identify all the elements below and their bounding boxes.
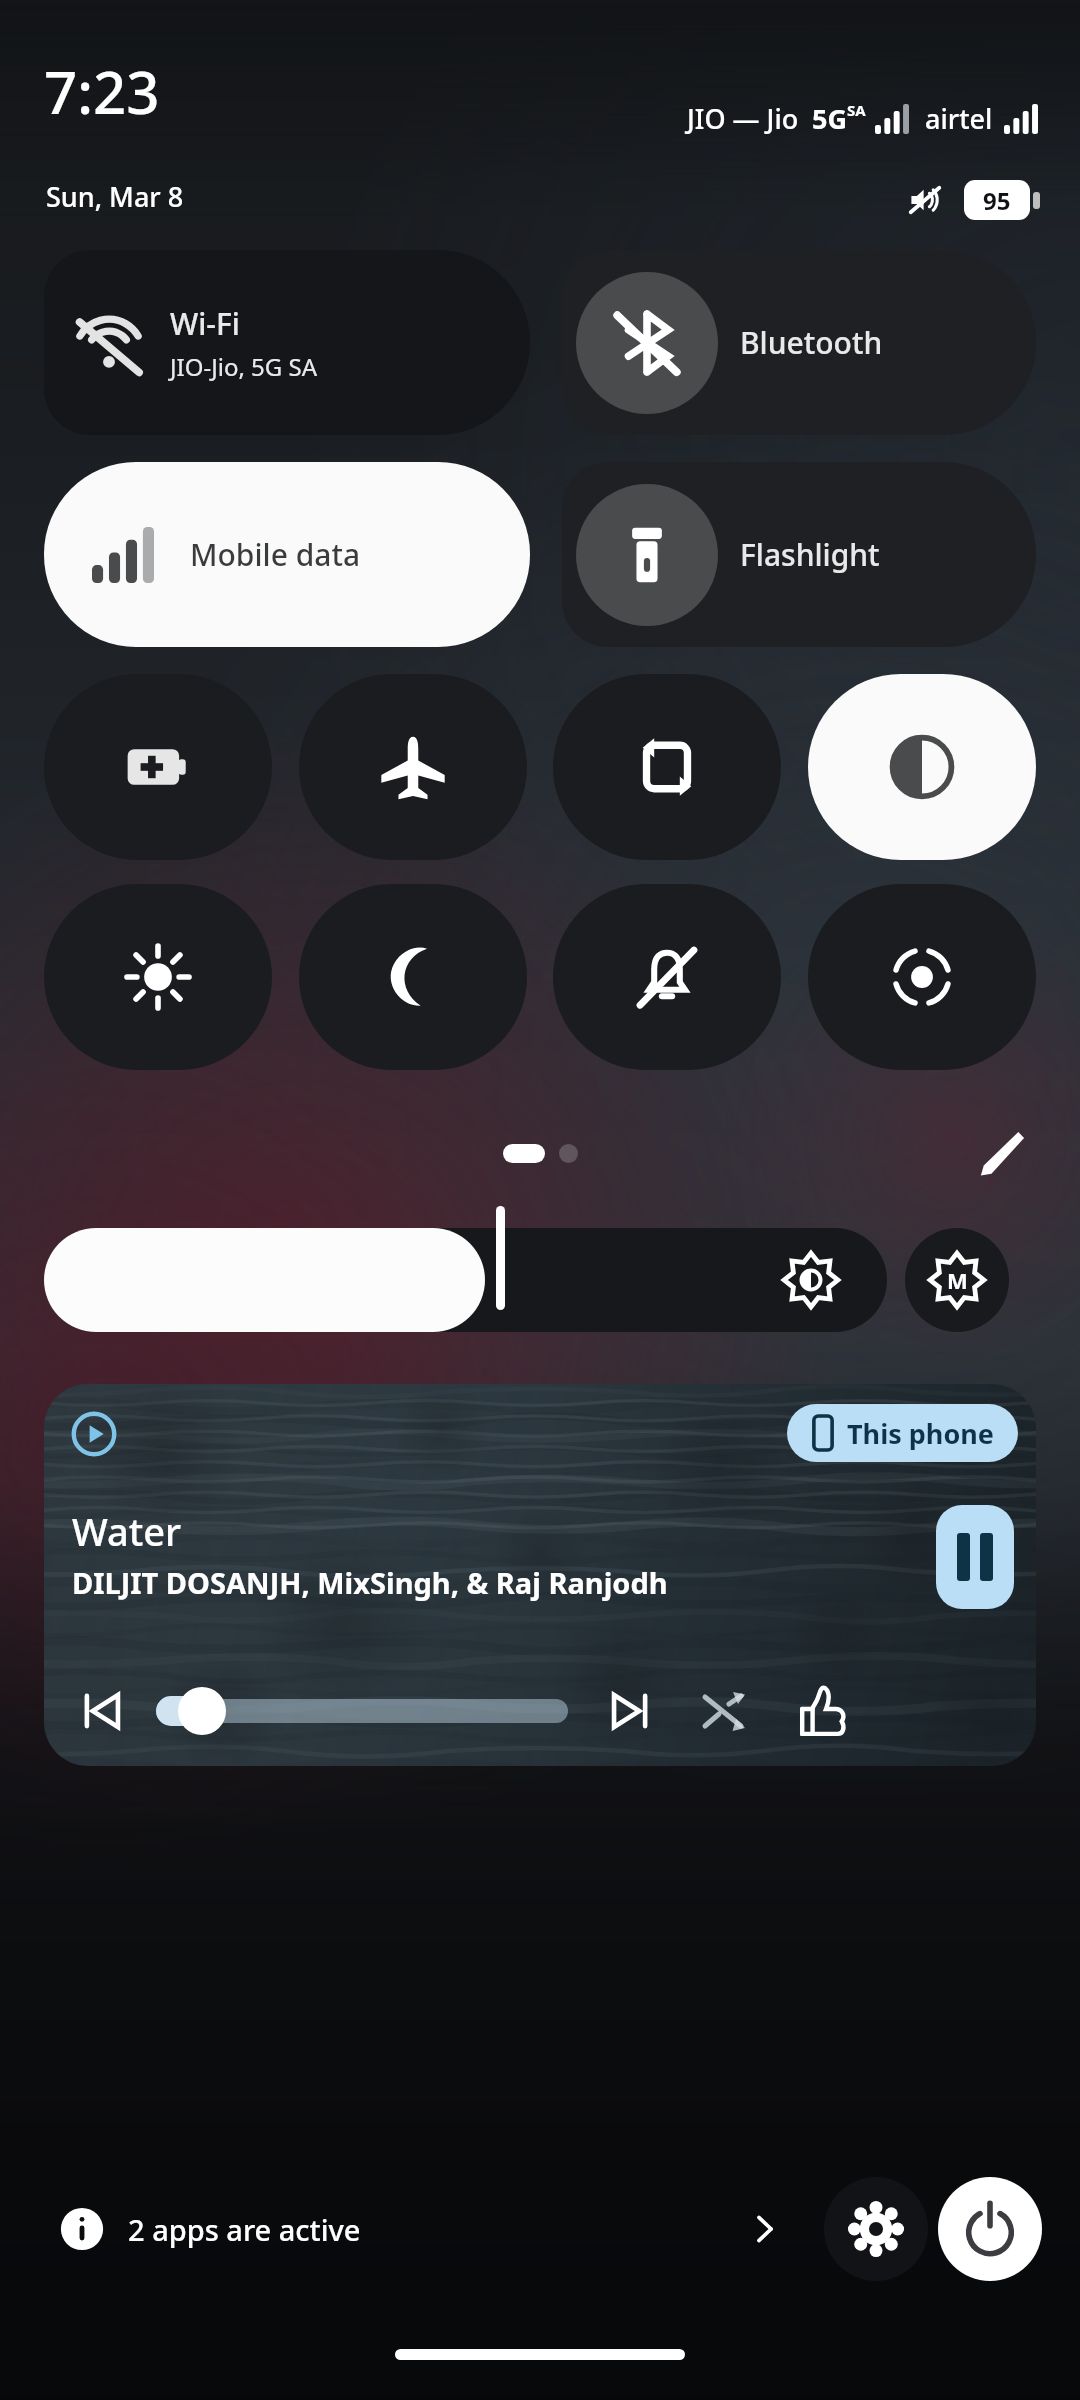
button[interactable]: 2 apps are active <box>44 2170 802 2288</box>
button[interactable]: Seek <box>156 1678 568 1744</box>
staticText: JIO — Jio <box>687 100 799 137</box>
button[interactable]: Like <box>794 1682 852 1740</box>
staticText: JIO-Jio, 5G SA <box>170 350 318 383</box>
staticText: Sun, Mar 8 <box>46 178 184 215</box>
staticText: 5G <box>812 100 847 137</box>
button[interactable]: Battery Saver <box>44 674 272 860</box>
staticText: Wi-Fi <box>170 303 240 344</box>
button[interactable]: Shuffle <box>698 1683 754 1739</box>
button[interactable]: Dark theme <box>808 674 1036 860</box>
staticText: SA <box>847 100 866 120</box>
staticText: Flashlight <box>740 534 880 575</box>
button[interactable]: Next <box>602 1683 658 1739</box>
button[interactable]: Mobile data <box>44 462 530 647</box>
button[interactable]: YouTube Music <box>70 1410 118 1458</box>
button[interactable]: This phone <box>787 1404 1018 1462</box>
staticText: This phone <box>847 1415 994 1452</box>
button[interactable]: YouTube Music <box>44 1384 1036 1766</box>
button[interactable]: Auto rotate <box>553 674 781 860</box>
button[interactable]: Previous <box>74 1683 130 1739</box>
button[interactable]: Night light <box>299 884 527 1070</box>
button[interactable]: Power <box>938 2177 1042 2281</box>
staticText: Bluetooth <box>740 322 883 363</box>
button[interactable]: Adaptive brightness <box>905 1228 1009 1332</box>
staticText: 95 <box>983 184 1011 217</box>
button[interactable]: Silent mode <box>553 884 781 1070</box>
button[interactable]: Brightness <box>44 1228 887 1332</box>
staticText: Mobile data <box>190 534 361 575</box>
staticText: 7:23 <box>44 52 160 131</box>
staticText: 2 apps are active <box>128 2210 361 2249</box>
button[interactable]: Airplane mode <box>299 674 527 860</box>
button[interactable]: Pause <box>936 1505 1014 1609</box>
staticText: DILJIT DOSANJH, MixSingh, & Raj Ranjodh <box>72 1563 668 1602</box>
button[interactable]: Flashlight <box>562 462 1036 647</box>
staticText: airtel <box>925 100 993 137</box>
button[interactable]: Adaptive brightness <box>44 884 272 1070</box>
button[interactable]: Edit tiles <box>968 1119 1036 1187</box>
staticText: M <box>947 1265 968 1295</box>
button[interactable]: Wi-Fi <box>44 250 530 435</box>
button[interactable]: Settings <box>824 2177 928 2281</box>
button[interactable]: Nearby Share <box>808 884 1036 1070</box>
button[interactable]: Bluetooth <box>562 250 1036 435</box>
staticText: Water <box>72 1505 182 1557</box>
